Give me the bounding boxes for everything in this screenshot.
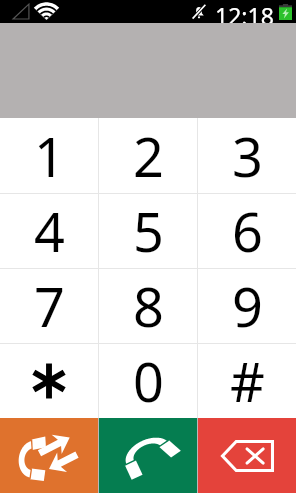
staticText: 7 — [34, 269, 65, 343]
button[interactable]: Backspace — [198, 418, 296, 493]
button[interactable]: 5 — [99, 194, 197, 268]
button[interactable]: 2 — [99, 118, 197, 193]
button[interactable]: Call log — [0, 418, 98, 493]
button[interactable]: 4 — [0, 194, 98, 268]
button[interactable] — [0, 344, 98, 418]
button[interactable]: 1 — [0, 118, 98, 193]
staticText: 3 — [232, 119, 263, 193]
staticText: 6 — [232, 194, 263, 268]
staticText: 9 — [232, 269, 263, 343]
button[interactable]: # — [198, 344, 296, 418]
staticText: 0 — [133, 344, 164, 418]
button[interactable]: Call — [99, 418, 197, 493]
staticText: 1 — [34, 119, 65, 193]
button[interactable]: 9 — [198, 269, 296, 343]
staticText: 12:18 — [215, 0, 274, 23]
staticText: 8 — [133, 269, 164, 343]
button[interactable]: 0 — [99, 344, 197, 418]
button[interactable]: 6 — [198, 194, 296, 268]
button[interactable]: 3 — [198, 118, 296, 193]
staticText: 5 — [133, 194, 164, 268]
staticText: # — [230, 344, 265, 418]
staticText: 4 — [34, 194, 65, 268]
button[interactable]: 7 — [0, 269, 98, 343]
button[interactable]: 8 — [99, 269, 197, 343]
staticText: 2 — [133, 119, 164, 193]
